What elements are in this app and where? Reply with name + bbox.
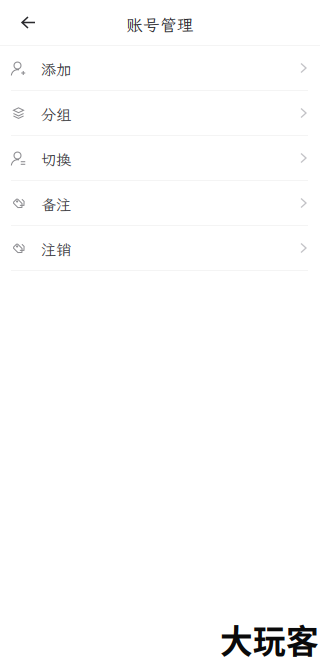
staticText: 添加: [41, 59, 71, 80]
staticText: 大玩客: [220, 616, 319, 661]
staticText: 注销: [41, 239, 71, 260]
button[interactable]: Back: [0, 4, 47, 40]
button[interactable]: 分组: [0, 91, 320, 136]
staticText: 切换: [41, 149, 71, 170]
staticText: 分组: [41, 104, 71, 125]
button[interactable]: 切换: [0, 136, 320, 181]
staticText: 账号管理: [126, 14, 194, 36]
staticText: 备注: [41, 194, 71, 215]
button[interactable]: 添加: [0, 46, 320, 91]
button[interactable]: 备注: [0, 181, 320, 226]
button[interactable]: 注销: [0, 226, 320, 271]
